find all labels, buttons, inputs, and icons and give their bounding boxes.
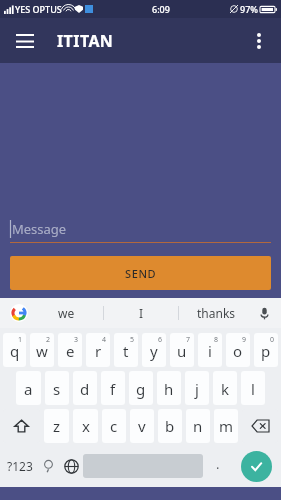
staticText: s — [53, 379, 61, 399]
button[interactable]: i — [198, 333, 222, 367]
button[interactable]: g — [129, 371, 153, 405]
button[interactable]: SEND — [10, 256, 271, 290]
staticText: d — [80, 379, 90, 399]
button[interactable]: k — [213, 371, 237, 405]
button[interactable]: Voice input — [252, 301, 276, 325]
button[interactable]: e — [58, 333, 82, 367]
staticText: I — [139, 305, 144, 321]
staticText: 8 — [214, 335, 219, 345]
button[interactable]: t — [114, 333, 138, 367]
staticText: . — [216, 455, 220, 473]
staticText: p — [261, 341, 271, 361]
staticText: u — [177, 341, 187, 361]
button[interactable]: u — [170, 333, 194, 367]
button[interactable]: Change language — [60, 445, 83, 487]
staticText: w — [36, 341, 48, 361]
staticText: 4 — [102, 335, 107, 345]
button[interactable]: More options — [243, 25, 275, 57]
button[interactable]: x — [73, 409, 98, 443]
button[interactable]: Backspace — [242, 409, 278, 443]
staticText: l — [251, 379, 255, 399]
button[interactable]: . — [203, 445, 233, 487]
button[interactable]: ?123 — [2, 445, 37, 487]
staticText: y — [150, 341, 158, 361]
staticText: f — [110, 379, 116, 399]
button[interactable]: Google — [8, 302, 30, 324]
staticText: h — [164, 379, 174, 399]
staticText: 0 — [270, 335, 275, 345]
staticText: 5 — [130, 335, 135, 345]
button[interactable]: j — [185, 371, 209, 405]
button[interactable]: q — [3, 333, 26, 367]
button[interactable]: thanks — [179, 298, 253, 328]
staticText: q — [10, 341, 20, 361]
staticText: r — [95, 341, 102, 361]
button[interactable]: h — [157, 371, 181, 405]
button[interactable]: b — [158, 409, 182, 443]
staticText: YES OPTUS — [15, 3, 62, 15]
button[interactable]: p — [254, 333, 278, 367]
staticText: 6:09 — [152, 3, 170, 15]
staticText: ITITAN — [57, 30, 114, 52]
staticText: 7 — [186, 335, 191, 345]
staticText: 1 — [18, 335, 23, 345]
button[interactable]: Enter — [241, 451, 272, 482]
staticText: t — [123, 341, 129, 361]
staticText: Message — [12, 220, 67, 238]
staticText: m — [219, 416, 234, 436]
staticText: i — [208, 341, 212, 361]
staticText: 9 — [242, 335, 247, 345]
button[interactable]: y — [142, 333, 166, 367]
staticText: 6 — [158, 335, 163, 345]
staticText: x — [82, 416, 90, 436]
button[interactable]: r — [86, 333, 110, 367]
button[interactable]: Open navigation menu — [8, 24, 42, 58]
staticText: c — [110, 416, 118, 436]
staticText: thanks — [197, 305, 236, 321]
staticText: j — [195, 379, 199, 399]
button[interactable]: m — [214, 409, 238, 443]
staticText: n — [193, 416, 203, 436]
button[interactable]: n — [186, 409, 210, 443]
button[interactable]: Shift — [3, 409, 40, 443]
button[interactable]: z — [44, 409, 69, 443]
button[interactable]: c — [102, 409, 126, 443]
button[interactable]: l — [241, 371, 265, 405]
staticText: ?123 — [7, 458, 33, 474]
button[interactable]: o — [226, 333, 250, 367]
staticText: z — [53, 416, 61, 436]
button[interactable]: d — [73, 371, 97, 405]
button[interactable]: f — [101, 371, 125, 405]
staticText: a — [24, 379, 33, 399]
button[interactable]: s — [45, 371, 69, 405]
button[interactable]: a — [16, 371, 41, 405]
staticText: 97% — [240, 3, 258, 15]
staticText: SEND — [125, 266, 157, 281]
staticText: e — [66, 341, 75, 361]
staticText: v — [138, 416, 146, 436]
staticText: 3 — [74, 335, 79, 345]
staticText: 2 — [46, 335, 51, 345]
staticText: we — [58, 305, 75, 321]
staticText: o — [233, 341, 243, 361]
staticText: k — [221, 379, 230, 399]
button[interactable]: w — [30, 333, 54, 367]
staticText: g — [136, 379, 146, 399]
button[interactable]: I — [104, 298, 178, 328]
button[interactable]: Emoji and comma — [37, 445, 60, 487]
staticText: b — [165, 416, 175, 436]
button[interactable]: we — [30, 298, 103, 328]
button[interactable]: v — [130, 409, 154, 443]
